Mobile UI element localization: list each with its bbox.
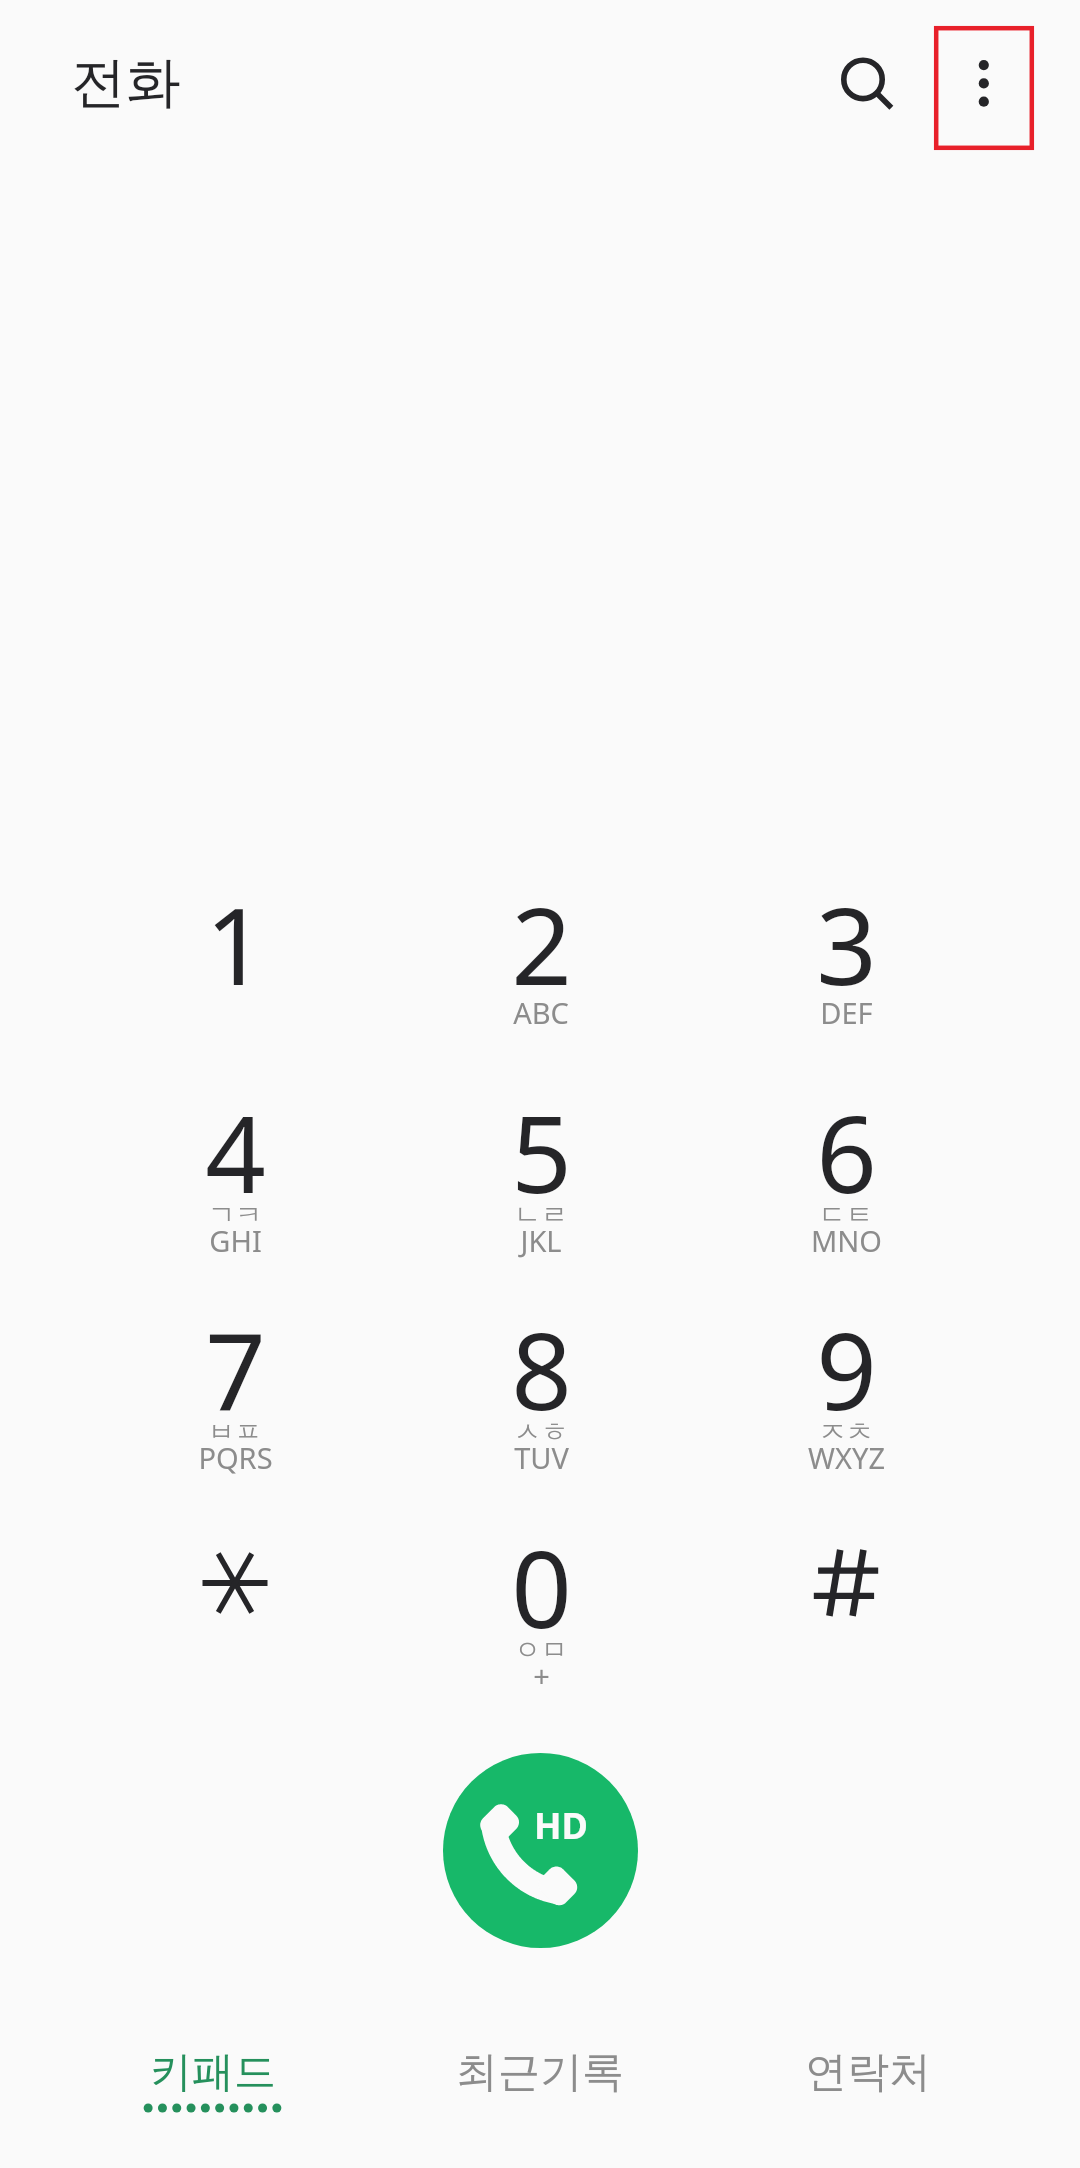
staticText: 5: [511, 1080, 572, 1220]
staticText: ㄴㄹ: [514, 1198, 568, 1232]
button[interactable]: Call: [443, 1753, 638, 1948]
button[interactable]: 9: [693, 1271, 998, 1488]
staticText: 4: [205, 1080, 266, 1220]
button[interactable]: 8: [388, 1271, 693, 1488]
staticText: PQRS: [198, 1438, 273, 1477]
button[interactable]: More options: [934, 26, 1034, 150]
staticText: 3: [816, 872, 877, 1012]
staticText: 7: [205, 1297, 266, 1437]
button[interactable]: 1: [82, 846, 387, 1063]
button[interactable]: 최근기록: [380, 1990, 700, 2168]
staticText: 9: [816, 1297, 877, 1437]
staticText: GHI: [209, 1221, 262, 1260]
staticText: WXYZ: [808, 1438, 885, 1477]
button[interactable]: 연락처: [708, 1990, 1028, 2168]
button[interactable]: Search: [808, 24, 918, 134]
staticText: ㄱㅋ: [208, 1198, 262, 1232]
staticText: ABC: [513, 993, 569, 1032]
button[interactable]: 2: [388, 846, 693, 1063]
staticText: 전화: [71, 48, 181, 117]
button[interactable]: Star key: [82, 1489, 387, 1706]
button[interactable]: 7: [82, 1271, 387, 1488]
staticText: 최근기록: [456, 2046, 624, 2099]
staticText: ㅅㅎ: [514, 1415, 568, 1449]
staticText: HD: [534, 1801, 588, 1850]
staticText: 1: [205, 872, 266, 1012]
staticText: 8: [511, 1297, 572, 1437]
staticText: 키패드: [150, 2046, 276, 2099]
button[interactable]: 5: [388, 1054, 693, 1271]
staticText: TUV: [514, 1438, 569, 1477]
button[interactable]: 4: [82, 1054, 387, 1271]
button[interactable]: 6: [693, 1054, 998, 1271]
staticText: 연락처: [805, 2046, 931, 2099]
staticText: +: [533, 1656, 550, 1695]
staticText: 6: [816, 1080, 877, 1220]
button[interactable]: 3: [693, 846, 998, 1063]
staticText: ㅂㅍ: [208, 1415, 262, 1449]
staticText: ㄷㅌ: [819, 1198, 873, 1232]
staticText: DEF: [820, 993, 873, 1032]
staticText: 0: [511, 1515, 572, 1655]
staticText: ㅈㅊ: [819, 1415, 873, 1449]
staticText: 2: [511, 872, 572, 1012]
staticText: MNO: [811, 1221, 882, 1260]
button[interactable]: Pound key: [693, 1489, 998, 1706]
staticText: JKL: [520, 1221, 562, 1260]
staticText: ㅇㅁ: [514, 1633, 568, 1667]
button[interactable]: 키패드: [52, 1990, 372, 2168]
button[interactable]: 0: [388, 1489, 693, 1706]
